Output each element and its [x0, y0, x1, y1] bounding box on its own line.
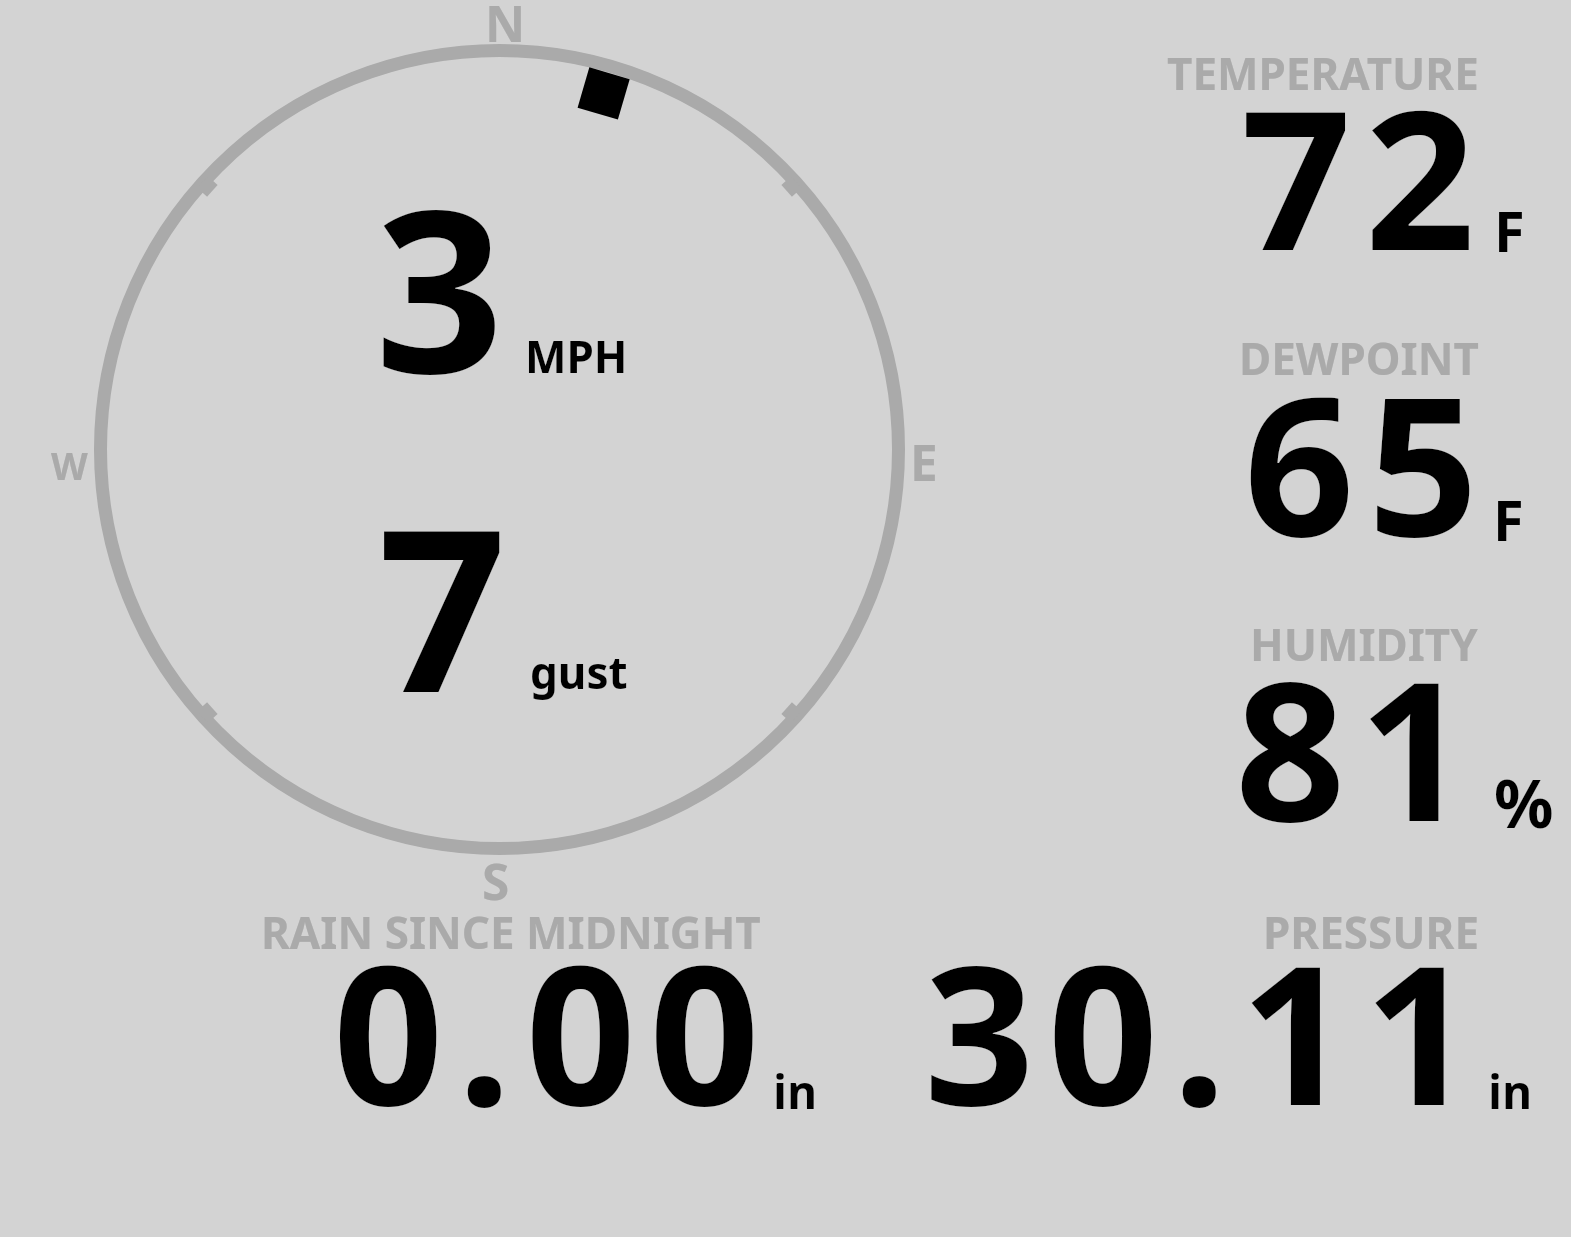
- button[interactable]: Pressure 30.11 inches: [900, 900, 1540, 1115]
- staticText: %: [1494, 757, 1554, 847]
- staticText: HUMIDITY: [1250, 614, 1478, 674]
- staticText: 0.00: [333, 899, 774, 1162]
- staticText: 65: [1244, 330, 1492, 593]
- staticText: 81: [1235, 615, 1483, 878]
- staticText: 7: [378, 452, 507, 758]
- button[interactable]: Temperature 72 degrees Fahrenheit: [1150, 40, 1571, 260]
- staticText: 72: [1241, 44, 1489, 307]
- staticText: F: [1494, 192, 1525, 268]
- button[interactable]: Rain since midnight 0.00 inches: [250, 900, 830, 1115]
- staticText: in: [773, 1060, 818, 1123]
- staticText: E: [910, 428, 938, 495]
- staticText: in: [1488, 1060, 1533, 1123]
- staticText: gust: [530, 642, 628, 702]
- staticText: RAIN SINCE MIDNIGHT: [261, 902, 761, 962]
- staticText: DEWPOINT: [1239, 328, 1479, 388]
- button[interactable]: Humidity 81 percent: [1150, 610, 1571, 830]
- button[interactable]: Wind 3 miles per hour, gusting 7, direct…: [100, 50, 900, 850]
- button[interactable]: Dewpoint 65 degrees Fahrenheit: [1150, 325, 1571, 545]
- staticText: F: [1493, 481, 1524, 557]
- staticText: TEMPERATURE: [1167, 43, 1479, 103]
- staticText: PRESSURE: [1263, 902, 1480, 962]
- staticText: W: [51, 439, 88, 491]
- staticText: S: [482, 847, 510, 914]
- staticText: MPH: [525, 326, 628, 386]
- staticText: 30.11: [924, 899, 1488, 1162]
- staticText: N: [485, 0, 526, 56]
- staticText: 3: [375, 133, 504, 439]
